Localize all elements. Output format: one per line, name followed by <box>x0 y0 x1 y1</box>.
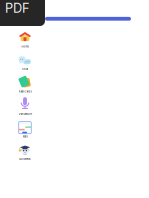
button[interactable]: Quizfetch <box>1 143 49 166</box>
button[interactable]: Flashcards <box>1 76 49 98</box>
staticText: Home <box>21 45 28 48</box>
button[interactable]: Live Lecture <box>1 98 49 121</box>
button[interactable]: PDF <box>0 0 45 26</box>
staticText: PDF <box>5 0 30 16</box>
staticText: Tests <box>22 135 27 138</box>
staticText: Quizfetch <box>19 157 31 161</box>
staticText: Chat <box>22 67 28 71</box>
button[interactable]: Chat <box>1 53 49 76</box>
button[interactable]: Home <box>1 31 49 53</box>
staticText: Live Lecture <box>18 112 31 116</box>
button[interactable]: Tests <box>1 121 49 143</box>
staticText: Flashcards <box>18 90 31 93</box>
